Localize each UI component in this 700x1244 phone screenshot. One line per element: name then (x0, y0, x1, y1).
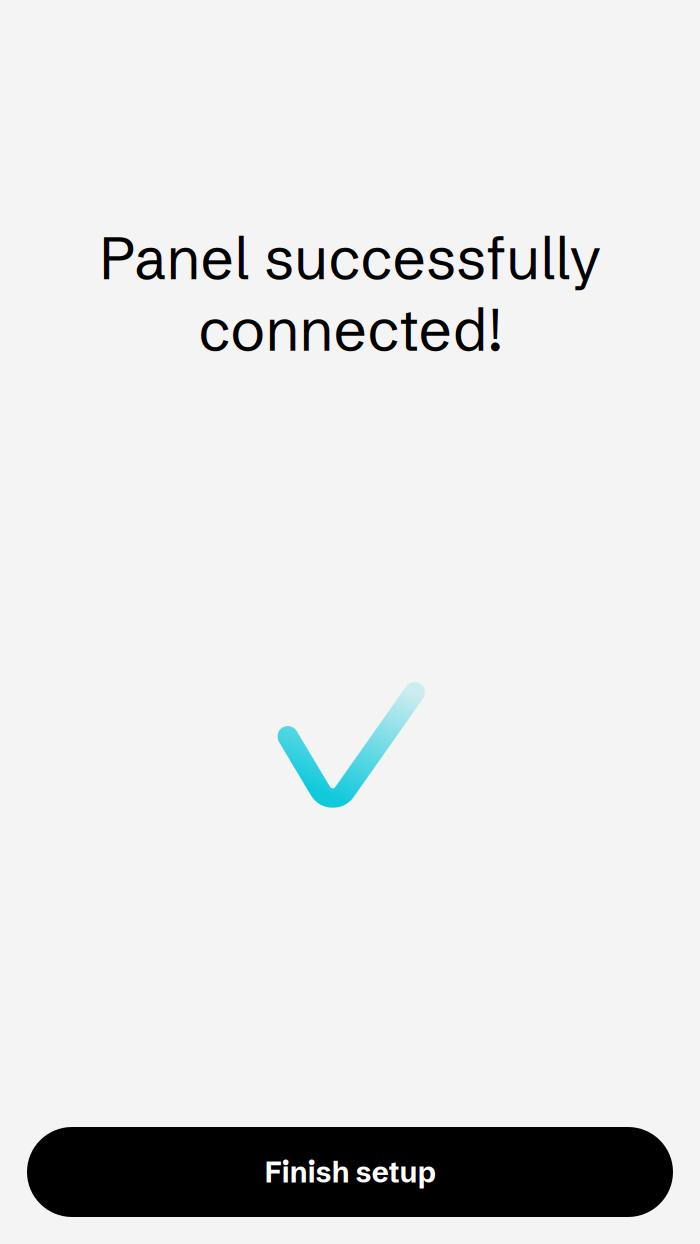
button[interactable]: Finish setup (27, 1127, 673, 1217)
staticText: Finish setup (264, 1154, 435, 1190)
staticText: Panel successfully connected! (99, 222, 601, 366)
